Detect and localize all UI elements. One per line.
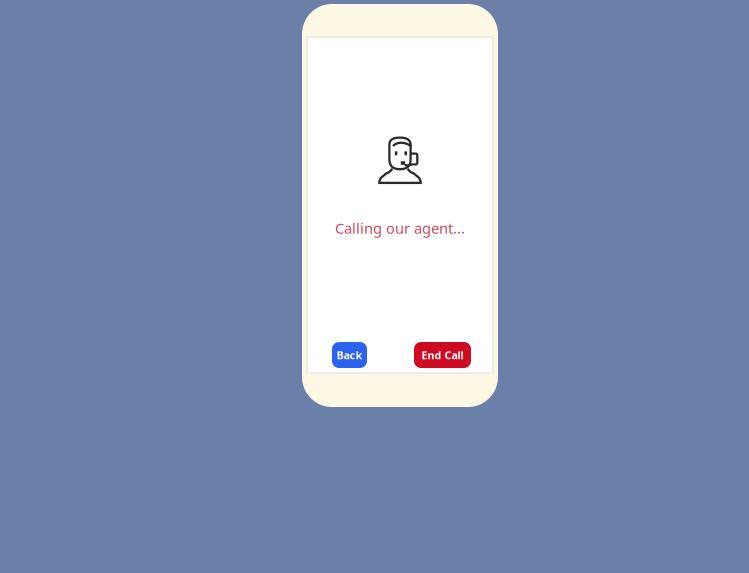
staticText: Calling our agent...: [335, 218, 465, 238]
button[interactable]: End Call: [414, 342, 471, 368]
button[interactable]: Back: [332, 342, 367, 368]
staticText: Back: [336, 348, 362, 362]
staticText: End Call: [421, 348, 463, 362]
